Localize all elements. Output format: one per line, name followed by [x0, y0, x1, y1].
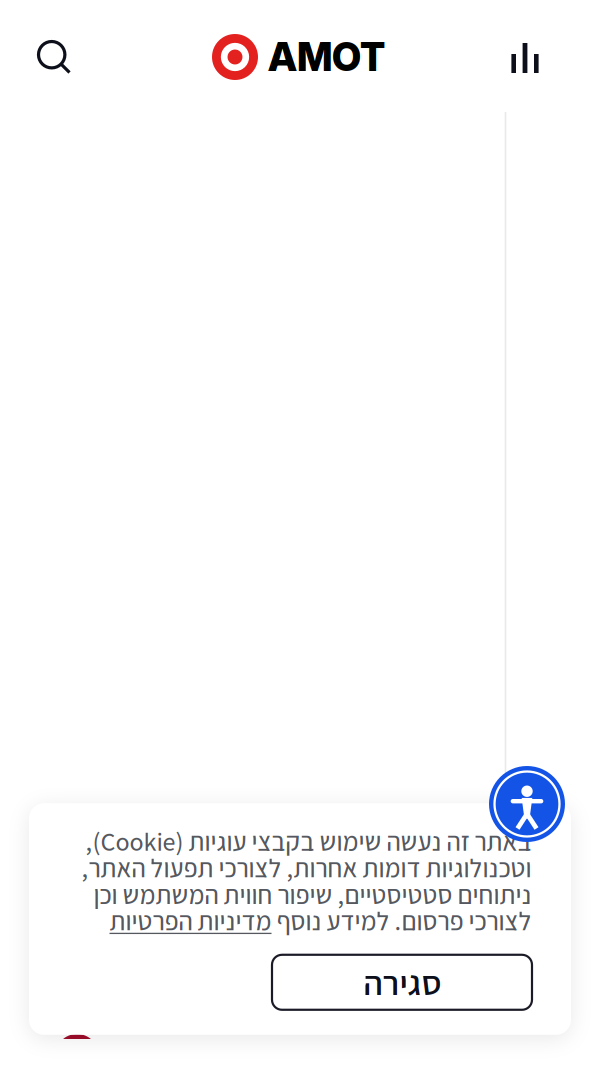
button[interactable]: Contact	[55, 1034, 99, 1039]
button[interactable]: Menu	[495, 28, 555, 88]
button[interactable]: Search	[25, 28, 85, 88]
staticText: סגירה	[363, 960, 441, 1005]
staticText: AMOT	[268, 34, 385, 80]
staticText: ניתוחים סטטיסטיים, שיפור חווית המשתמש וכ…	[93, 877, 531, 911]
button[interactable]: סגירה	[272, 955, 532, 1010]
button[interactable]: Accessibility options	[489, 766, 565, 842]
staticText: באתר זה נעשה שימוש בקבצי עוגיות (Cookie)…	[85, 824, 531, 858]
staticText: לצורכי פרסום. למידע נוסף מדיניות הפרטיות	[109, 904, 531, 937]
staticText: וטכנולוגיות דומות אחרות, לצורכי תפעול הא…	[81, 851, 531, 885]
